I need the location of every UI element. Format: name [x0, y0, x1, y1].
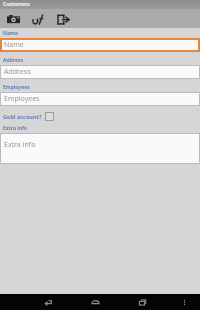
- staticText: Employees: [3, 84, 30, 91]
- button[interactable]: Edit signature: [29, 10, 47, 28]
- staticText: Address: [3, 57, 23, 64]
- button[interactable]: Home: [87, 294, 103, 310]
- button[interactable]: Gold account?: [0, 112, 200, 121]
- staticText: Address: [4, 67, 31, 77]
- button[interactable]: Back: [40, 294, 56, 310]
- button[interactable]: More options: [176, 294, 192, 310]
- staticText: Customers: [3, 1, 30, 8]
- button[interactable]: Take photo: [4, 10, 22, 28]
- staticText: Extra info: [3, 125, 28, 132]
- staticText: Name: [4, 40, 24, 50]
- button[interactable]: Address: [0, 65, 200, 79]
- staticText: Extra info: [4, 140, 36, 150]
- button[interactable]: Log out: [54, 10, 72, 28]
- staticText: Employees: [4, 94, 40, 104]
- staticText: Name: [3, 30, 18, 37]
- button[interactable]: Recent apps: [134, 294, 150, 310]
- button[interactable]: Employees: [0, 92, 200, 106]
- staticText: Gold account?: [3, 113, 42, 120]
- button[interactable]: Name: [0, 38, 200, 52]
- button[interactable]: Extra info: [0, 133, 200, 164]
